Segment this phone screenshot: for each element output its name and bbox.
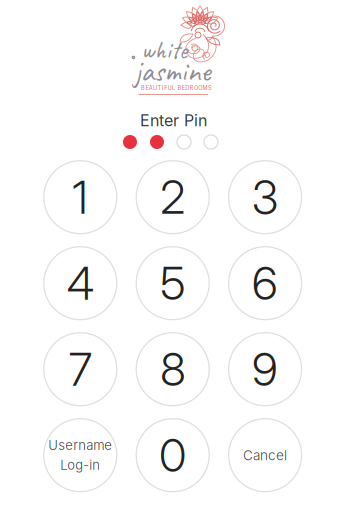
button[interactable]: 8 xyxy=(136,333,209,406)
button[interactable]: 7 xyxy=(44,333,117,406)
button[interactable]: 2 xyxy=(136,161,209,234)
staticText: 8 xyxy=(160,342,185,397)
button[interactable]: 1 xyxy=(44,161,117,234)
staticText: 5 xyxy=(160,256,185,311)
button[interactable]: 5 xyxy=(136,247,209,320)
button[interactable]: 9 xyxy=(229,333,302,406)
staticText: white xyxy=(141,34,187,66)
staticText: 0 xyxy=(159,428,186,483)
staticText: 9 xyxy=(252,342,278,397)
button[interactable]: Cancel xyxy=(229,419,302,492)
staticText: Log-in xyxy=(60,457,100,473)
staticText: Enter Pin xyxy=(140,111,207,130)
staticText: 1 xyxy=(72,170,88,225)
staticText: Username xyxy=(48,437,112,453)
button[interactable]: Username xyxy=(44,419,117,492)
staticText: 3 xyxy=(252,170,278,225)
button[interactable]: 6 xyxy=(229,247,302,320)
button[interactable]: 4 xyxy=(44,247,117,320)
staticText: 4 xyxy=(67,256,94,311)
staticText: Cancel xyxy=(243,447,287,463)
button[interactable]: 3 xyxy=(229,161,302,234)
staticText: 6 xyxy=(252,256,278,311)
staticText: BEAUTIFUL BEDROOMS xyxy=(141,85,212,91)
staticText: 7 xyxy=(69,342,92,397)
button[interactable]: 0 xyxy=(136,419,209,492)
staticText: jasmine xyxy=(134,52,210,90)
staticText: 2 xyxy=(160,170,185,225)
